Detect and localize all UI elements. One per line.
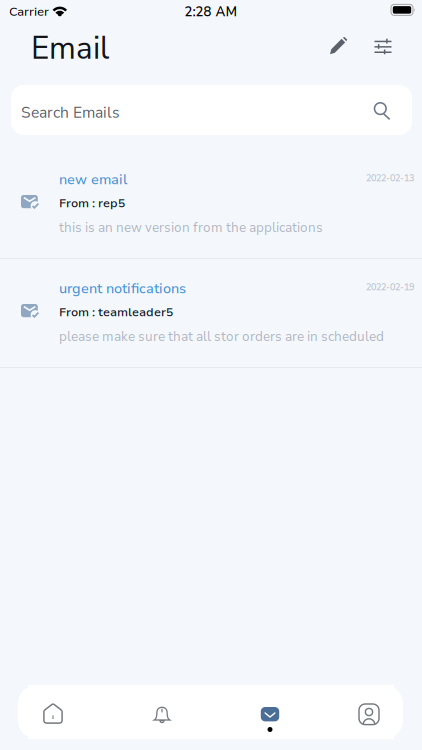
staticText: new email xyxy=(59,170,127,189)
staticText: please make sure that all stor orders ar… xyxy=(59,328,384,345)
staticText: Email xyxy=(31,27,109,70)
staticText: From : rep5 xyxy=(59,195,125,211)
button[interactable]: Filter xyxy=(364,28,402,66)
button[interactable]: new email xyxy=(0,150,422,258)
staticText: urgent notifications xyxy=(59,279,186,298)
button[interactable]: Notifications xyxy=(137,685,187,739)
staticText: Carrier xyxy=(9,3,49,20)
staticText: From : teamleader5 xyxy=(59,304,173,320)
staticText: 2022-02-13 xyxy=(366,172,414,184)
staticText: 2022-02-19 xyxy=(366,281,414,293)
button[interactable]: Email xyxy=(245,685,295,739)
staticText: Search Emails xyxy=(21,102,120,123)
button[interactable]: Compose xyxy=(320,27,358,65)
button[interactable]: Search Emails xyxy=(11,85,412,135)
staticText: 2:28 AM xyxy=(184,3,237,21)
button[interactable]: Home xyxy=(28,685,78,739)
button[interactable]: Profile xyxy=(344,685,394,739)
button[interactable]: urgent notifications xyxy=(0,259,422,367)
staticText: this is an new version from the applicat… xyxy=(59,219,323,236)
